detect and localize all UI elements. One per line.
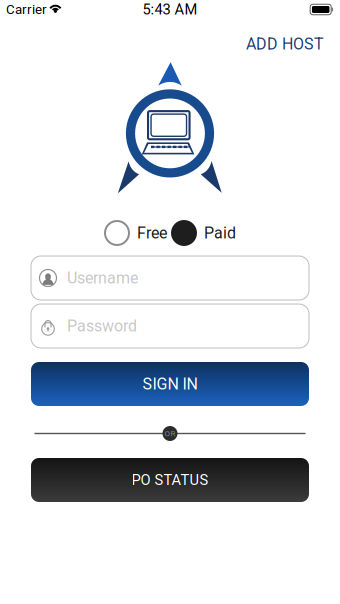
staticText: Carrier bbox=[6, 2, 47, 17]
staticText: PO STATUS bbox=[131, 471, 208, 489]
staticText: Username bbox=[67, 269, 138, 287]
button[interactable]: Free bbox=[104, 218, 167, 248]
staticText: 5:43 AM bbox=[142, 1, 197, 18]
button[interactable]: SIGN IN bbox=[31, 362, 309, 406]
staticText: OR bbox=[164, 429, 175, 438]
button[interactable]: Password bbox=[31, 304, 309, 348]
staticText: Paid bbox=[204, 224, 236, 242]
button[interactable]: ADD HOST bbox=[230, 18, 340, 61]
staticText: SIGN IN bbox=[142, 375, 197, 393]
button[interactable]: Paid bbox=[171, 218, 236, 248]
staticText: ADD HOST bbox=[246, 35, 324, 53]
button[interactable]: PO STATUS bbox=[31, 458, 309, 502]
staticText: Password bbox=[67, 317, 137, 335]
staticText: Free bbox=[137, 224, 167, 242]
button[interactable]: Username bbox=[31, 256, 309, 300]
